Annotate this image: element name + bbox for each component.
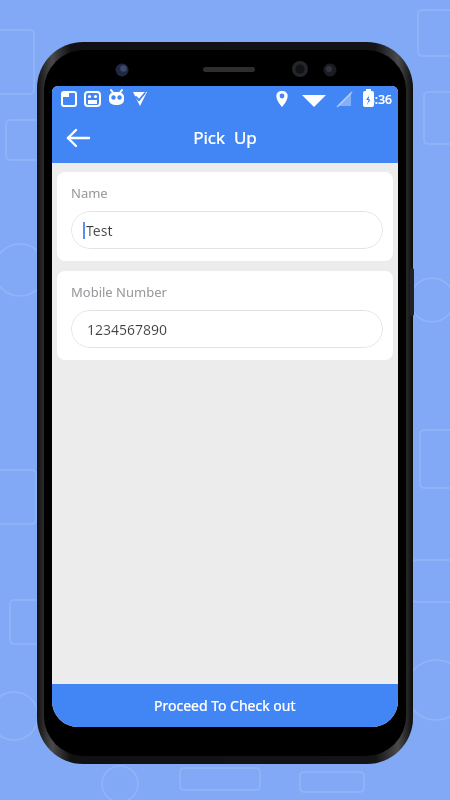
- staticText: Test: [86, 221, 113, 240]
- staticText: 3:36: [368, 91, 392, 107]
- staticText: Pick Up: [193, 126, 257, 149]
- staticText: Name: [71, 184, 108, 202]
- staticText: Proceed To Check out: [154, 696, 296, 715]
- staticText: 1234567890: [87, 320, 168, 339]
- staticText: Mobile Number: [71, 283, 167, 301]
- button[interactable]: Test: [71, 211, 383, 249]
- button[interactable]: 1234567890: [71, 310, 383, 348]
- button[interactable]: Mobile Number: [57, 271, 393, 360]
- button[interactable]: Name: [57, 172, 393, 261]
- button[interactable]: Back: [56, 116, 100, 160]
- button[interactable]: Proceed To Check out: [52, 684, 398, 727]
